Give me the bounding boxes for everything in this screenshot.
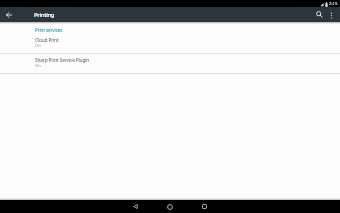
staticText: On: [35, 63, 41, 69]
button[interactable]: [314, 9, 325, 20]
button[interactable]: [164, 201, 175, 212]
staticText: Printing: [34, 11, 55, 19]
staticText: Cloud Print: [35, 37, 59, 44]
button[interactable]: [4, 10, 13, 19]
staticText: 2:15: [329, 1, 338, 7]
button[interactable]: Cloud Print: [0, 32, 340, 53]
button[interactable]: Sharp Print Service Plugin: [0, 54, 340, 73]
staticText: Print services: [35, 27, 63, 33]
button[interactable]: [130, 201, 141, 212]
button[interactable]: [326, 10, 336, 20]
button[interactable]: [199, 201, 210, 212]
staticText: Sharp Print Service Plugin: [35, 57, 90, 64]
staticText: On: [35, 43, 41, 49]
